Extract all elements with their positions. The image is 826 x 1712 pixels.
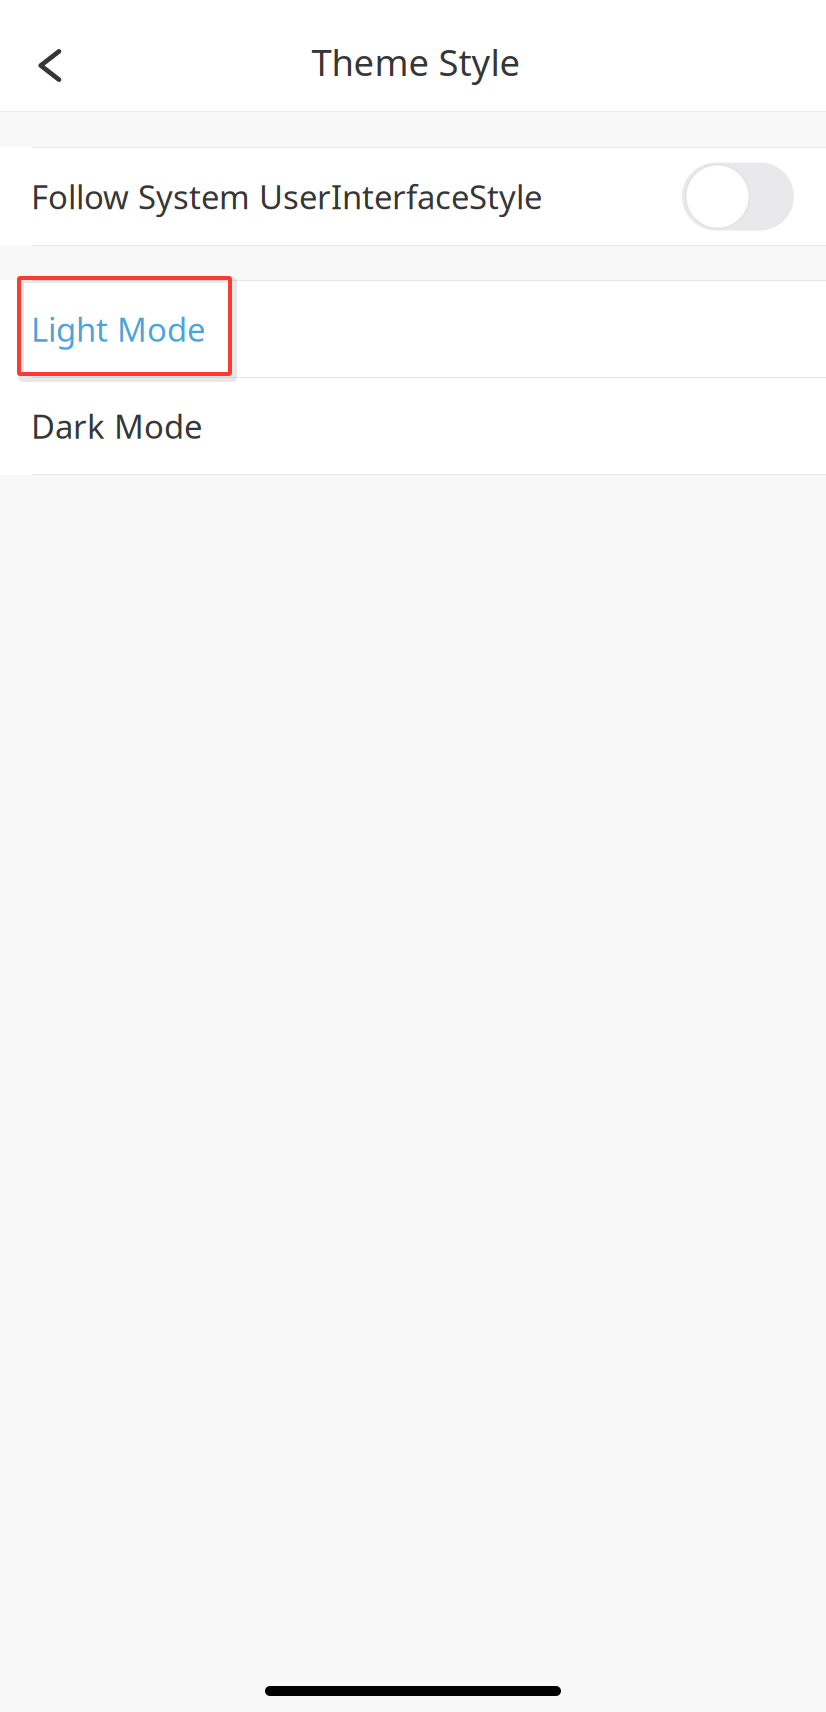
staticText: Dark Mode <box>31 404 202 448</box>
staticText: Theme Style <box>311 37 520 87</box>
button[interactable]: Follow System UserInterfaceStyle <box>0 148 826 245</box>
button[interactable]: Dark Mode <box>0 378 826 474</box>
button[interactable]: Light Mode <box>0 281 826 377</box>
staticText: Light Mode <box>31 307 205 351</box>
button[interactable]: Back <box>11 19 91 109</box>
staticText: Follow System UserInterfaceStyle <box>31 174 542 219</box>
